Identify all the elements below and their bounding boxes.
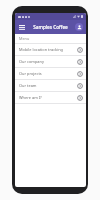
staticText: Our projects	[19, 71, 75, 76]
button[interactable]: Account	[74, 22, 84, 32]
staticText: Menu	[19, 36, 30, 41]
button[interactable]: Open navigation menu	[17, 22, 27, 32]
button[interactable]: Our company	[15, 56, 86, 67]
staticText: Our team	[19, 83, 75, 88]
staticText: Our company	[19, 59, 75, 64]
button[interactable]: Our team	[15, 80, 86, 91]
staticText: Samples Coffee	[33, 24, 68, 30]
staticText: Where am I?	[19, 95, 75, 100]
button[interactable]: Mobile location tracking	[15, 44, 86, 55]
staticText: Mobile location tracking	[19, 47, 75, 52]
button[interactable]: Our projects	[15, 68, 86, 79]
button[interactable]: Where am I?	[15, 92, 86, 103]
